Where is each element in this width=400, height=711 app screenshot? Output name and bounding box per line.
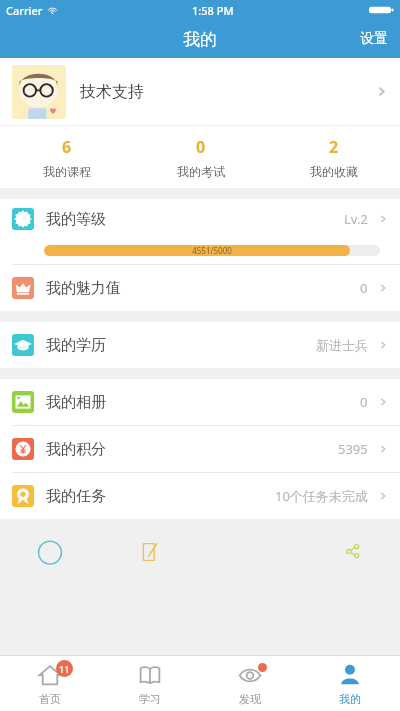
staticText: 5395 [338, 440, 368, 458]
staticText: 我的课程 [43, 164, 91, 179]
button[interactable]: 6 [0, 126, 134, 188]
button[interactable]: 发现 [200, 656, 300, 711]
staticText: 新进士兵 [316, 337, 368, 353]
staticText: 我的相册 [46, 393, 106, 412]
staticText: 4551/5000 [44, 245, 380, 256]
button[interactable]: Share [300, 530, 400, 564]
staticText: 我的 [339, 692, 361, 706]
staticText: 11 [59, 663, 70, 675]
staticText: 0 [196, 136, 206, 158]
staticText: 我的等级 [46, 210, 106, 229]
button[interactable]: 学习 [100, 656, 200, 711]
button[interactable]: 2 [267, 126, 400, 188]
staticText: 6 [62, 136, 72, 158]
staticText: 0 [360, 393, 368, 411]
staticText: 首页 [39, 692, 61, 706]
staticText: 我的积分 [46, 440, 106, 459]
button[interactable]: 设置 [348, 22, 400, 56]
staticText: 我的任务 [46, 487, 106, 506]
staticText: Lv.2 [344, 210, 368, 228]
button[interactable]: 技术支持 [0, 58, 400, 125]
staticText: 我的 [183, 29, 217, 50]
staticText: 学习 [139, 692, 161, 706]
button[interactable]: 0 [134, 126, 267, 188]
button[interactable]: 11 [0, 656, 100, 711]
staticText: 我的收藏 [310, 164, 358, 179]
button[interactable]: 我的等级 [0, 199, 400, 264]
button[interactable]: 我的相册 [0, 379, 400, 425]
button[interactable]: 我的 [300, 656, 400, 711]
staticText: 技术支持 [80, 82, 144, 102]
staticText: 2 [329, 136, 339, 158]
button[interactable]: 我的学历 [0, 322, 400, 368]
staticText: 发现 [239, 692, 261, 706]
staticText: 1:58 PM [192, 3, 234, 18]
staticText: 10个任务未完成 [275, 487, 368, 505]
button[interactable]: 我的任务 [0, 473, 400, 519]
button[interactable]: 我的积分 [0, 426, 400, 472]
staticText: 我的学历 [46, 336, 106, 355]
staticText: 我的考试 [177, 164, 225, 179]
staticText: Carrier [6, 3, 43, 18]
button[interactable]: Edit [100, 530, 200, 564]
staticText: 我的魅力值 [46, 279, 121, 298]
button[interactable]: Help [0, 530, 100, 564]
staticText: 设置 [360, 30, 388, 48]
button[interactable]: 我的魅力值 [0, 265, 400, 311]
staticText: 0 [360, 279, 368, 297]
